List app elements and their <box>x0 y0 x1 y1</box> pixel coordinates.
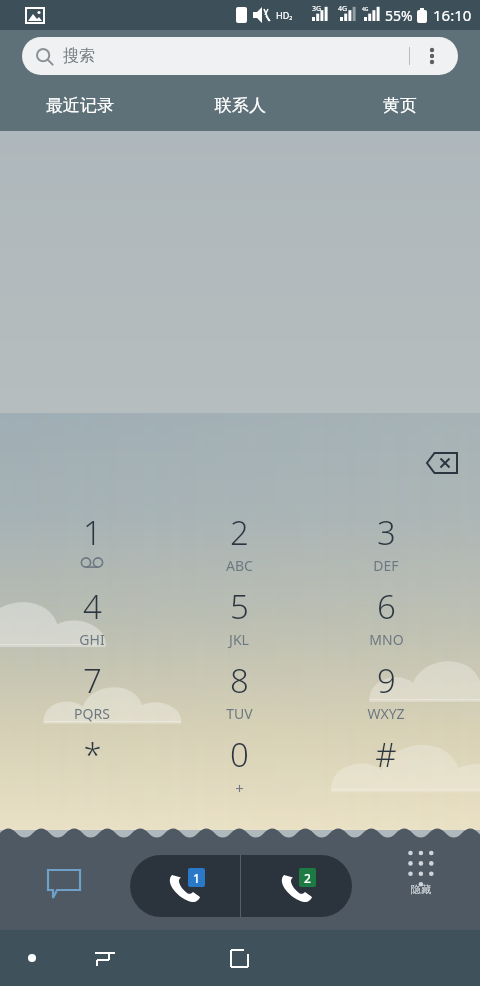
staticText: ABC <box>226 556 253 575</box>
button[interactable]: More options <box>420 44 444 68</box>
staticText: 6 <box>377 584 396 629</box>
staticText: 55% <box>385 6 413 25</box>
button[interactable]: Call with SIM 2 <box>241 855 352 917</box>
button[interactable]: 2 <box>179 510 299 584</box>
staticText: 隐藏 <box>411 883 431 896</box>
button[interactable]: 搜索 <box>22 37 458 75</box>
staticText: 4G <box>362 6 369 13</box>
button[interactable]: 0 <box>179 732 299 806</box>
button[interactable]: 7 <box>32 658 152 732</box>
staticText: GHI <box>79 630 105 649</box>
staticText: 8 <box>230 658 249 703</box>
staticText: 2 <box>304 870 311 886</box>
staticText: PQRS <box>74 704 110 723</box>
button[interactable]: Backspace <box>420 443 464 483</box>
button[interactable]: Call with SIM 1 <box>130 855 240 917</box>
staticText: 7 <box>83 658 102 703</box>
staticText: TUV <box>226 704 253 723</box>
button[interactable]: 黄页 <box>320 87 480 123</box>
staticText: HD₂ <box>276 9 293 21</box>
staticText: 最近记录 <box>46 95 114 116</box>
staticText: 0 <box>230 732 249 777</box>
staticText: 9 <box>377 658 396 703</box>
staticText: 黄页 <box>383 95 417 116</box>
staticText: 3 <box>377 510 396 555</box>
staticText: WXYZ <box>367 704 405 723</box>
button[interactable]: 6 <box>326 584 446 658</box>
staticText: 3G <box>312 4 322 14</box>
staticText: 1 <box>83 510 102 555</box>
button[interactable]: 5 <box>179 584 299 658</box>
button[interactable]: 3 <box>326 510 446 584</box>
button[interactable]: # <box>326 732 446 806</box>
button[interactable]: Back <box>81 934 129 982</box>
staticText: 2 <box>230 510 249 555</box>
button[interactable]: Menu <box>8 934 56 982</box>
button[interactable]: 最近记录 <box>0 87 160 123</box>
button[interactable]: 1 <box>32 510 152 584</box>
staticText: # <box>375 732 397 777</box>
staticText: 联系人 <box>215 95 266 116</box>
staticText: 搜索 <box>63 46 95 66</box>
button[interactable]: Messages <box>32 852 96 916</box>
staticText: * <box>83 732 102 777</box>
button[interactable]: 联系人 <box>160 87 320 123</box>
staticText: + <box>235 778 244 798</box>
staticText: MNO <box>369 630 404 649</box>
staticText: DEF <box>373 556 399 575</box>
staticText: 4G <box>338 4 348 14</box>
button[interactable]: 4 <box>32 584 152 658</box>
staticText: 5 <box>230 584 249 629</box>
button[interactable]: 9 <box>326 658 446 732</box>
button[interactable]: * <box>32 732 152 806</box>
staticText: JKL <box>229 630 249 649</box>
button[interactable]: Recents <box>215 934 263 982</box>
staticText: 4 <box>83 584 102 629</box>
staticText: 1 <box>193 870 200 886</box>
button[interactable]: 8 <box>179 658 299 732</box>
staticText: 16:10 <box>433 5 472 25</box>
button[interactable]: Hide keypad <box>388 850 454 916</box>
